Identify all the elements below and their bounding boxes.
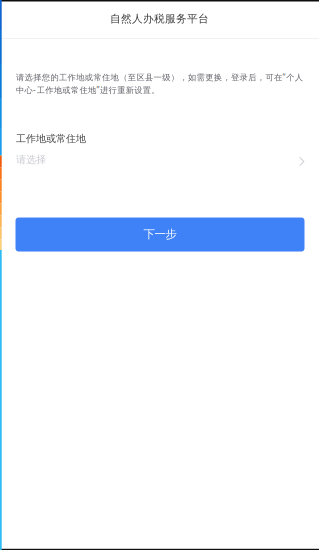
staticText: 中心-工作地或常住地”进行重新设置。 (16, 84, 159, 95)
staticText: 自然人办税服务平台 (110, 12, 209, 25)
staticText: 下一步 (143, 227, 176, 241)
staticText: 请选择 (16, 153, 46, 166)
staticText: 请选择您的工作地或常住地（至区县一级），如需更换，登录后，可在“个人 (16, 71, 303, 83)
button[interactable]: 下一步 (15, 217, 304, 251)
button[interactable]: 请选择 (0, 151, 319, 177)
staticText: 工作地或常住地 (16, 132, 86, 145)
